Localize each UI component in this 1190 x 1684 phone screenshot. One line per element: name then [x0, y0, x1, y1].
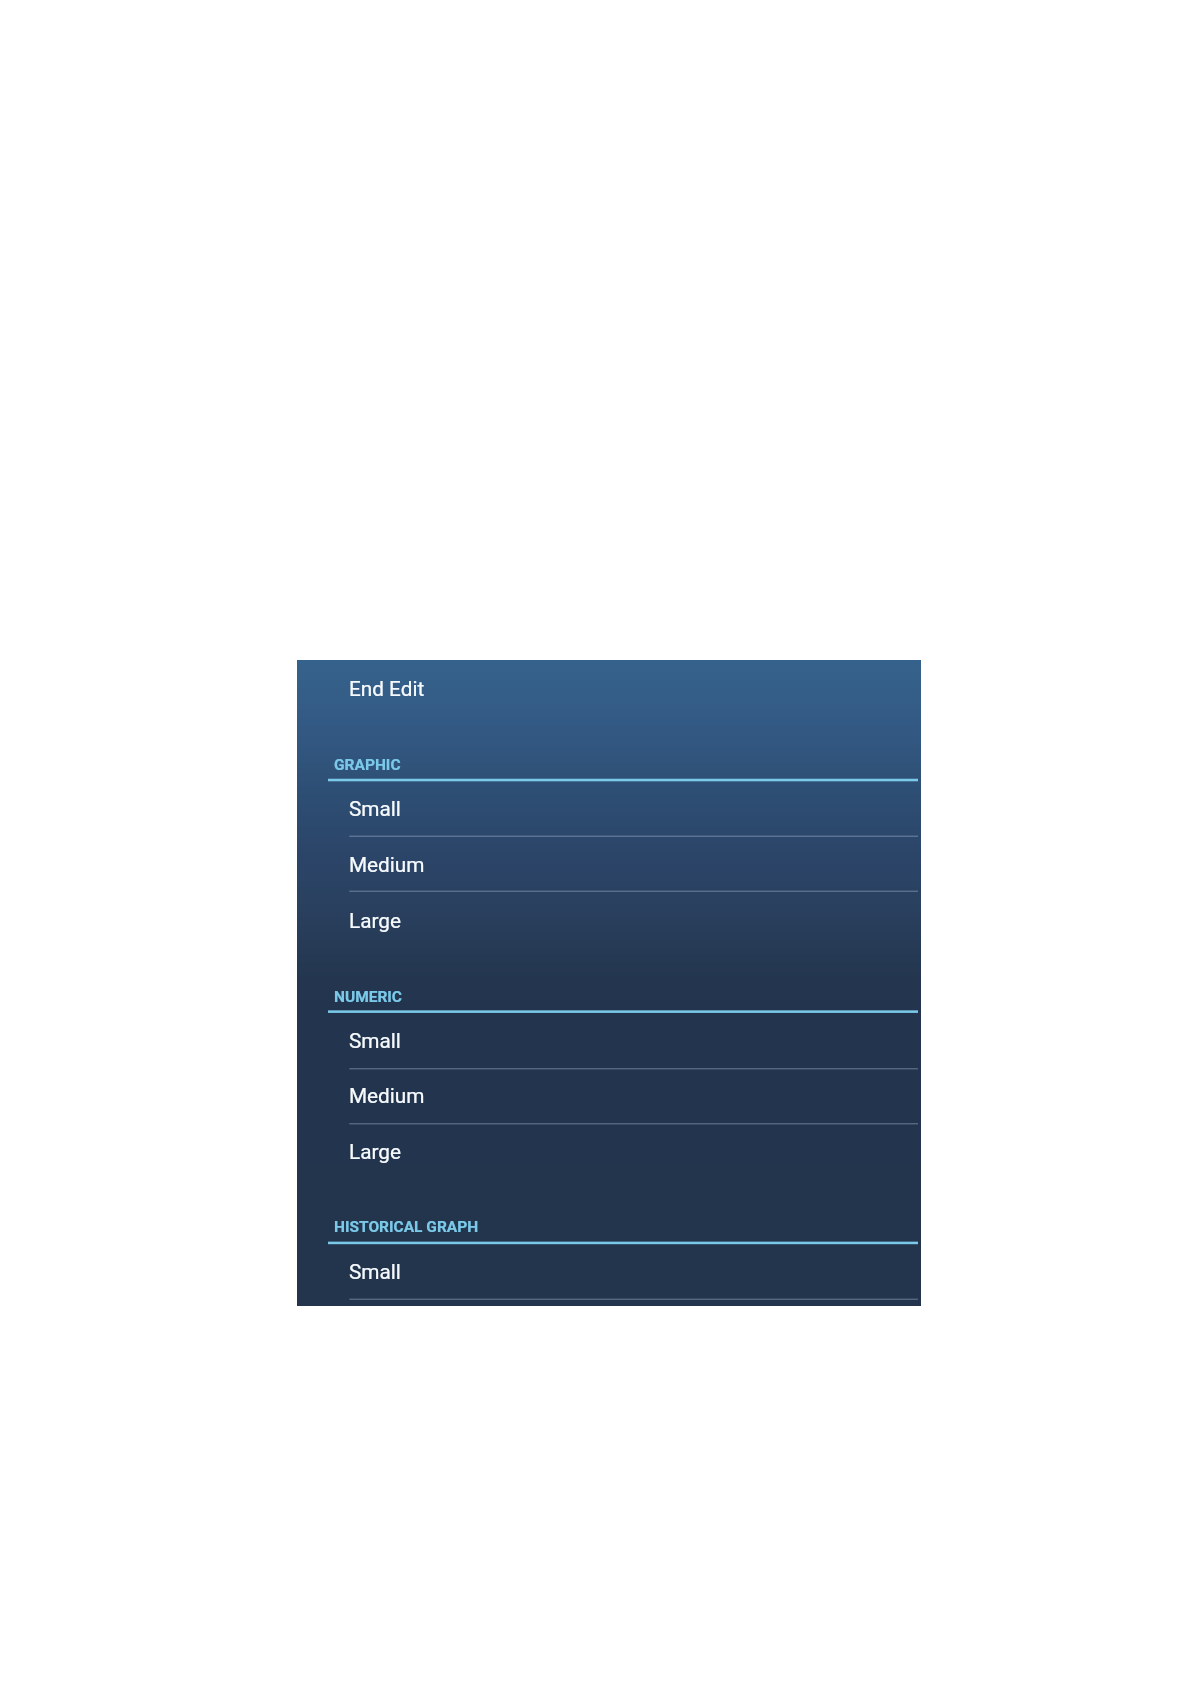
- button[interactable]: Large: [297, 1124, 921, 1179]
- button[interactable]: Medium: [297, 1069, 921, 1123]
- button[interactable]: Large: [297, 892, 921, 947]
- staticText: End Edit: [349, 677, 425, 701]
- staticText: Small: [349, 797, 401, 821]
- staticText: Small: [349, 1029, 401, 1053]
- staticText: GRAPHIC: [334, 756, 401, 774]
- staticText: NUMERIC: [334, 988, 403, 1006]
- staticText: Medium: [349, 1084, 425, 1108]
- staticText: HISTORICAL GRAPH: [334, 1218, 479, 1236]
- button[interactable]: End Edit: [297, 660, 921, 716]
- staticText: Large: [349, 1140, 401, 1164]
- staticText: Large: [349, 909, 401, 933]
- button[interactable]: Medium: [297, 837, 921, 891]
- staticText: Medium: [349, 853, 425, 877]
- button[interactable]: Small: [297, 1244, 921, 1299]
- button[interactable]: Small: [297, 781, 921, 836]
- button[interactable]: Small: [297, 1013, 921, 1068]
- staticText: Small: [349, 1260, 401, 1284]
